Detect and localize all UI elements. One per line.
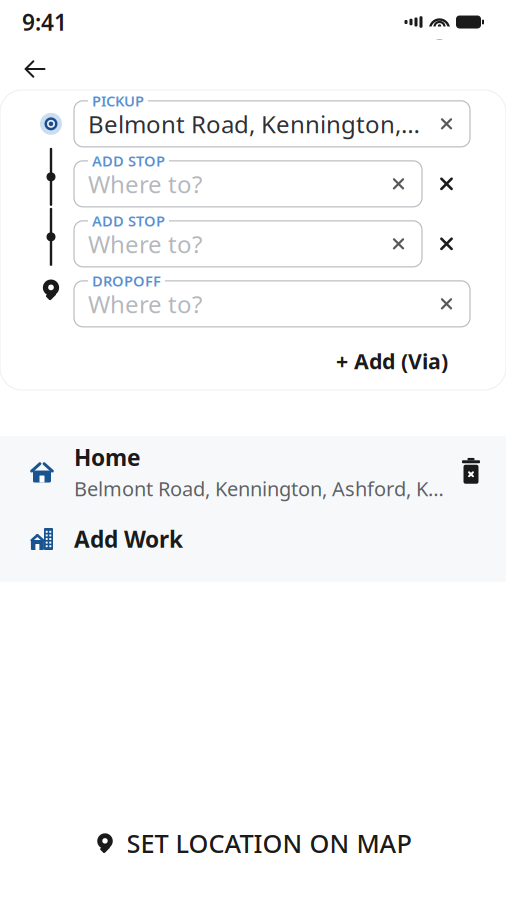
staticText: Where to? xyxy=(88,168,202,200)
button[interactable]: Belmont Road, Kennington, Ashford, Ken xyxy=(74,101,470,147)
staticText: + Add (Via) xyxy=(336,347,448,375)
button[interactable]: + Add (Via) xyxy=(330,341,454,381)
button[interactable]: Remove stop xyxy=(432,229,461,258)
staticText: Where to? xyxy=(88,228,202,260)
staticText: Home xyxy=(74,442,141,472)
staticText: 9:41 xyxy=(22,7,67,37)
staticText: ADD STOP xyxy=(92,151,165,171)
staticText: SET LOCATION ON MAP xyxy=(126,826,411,860)
staticText: Where to? xyxy=(88,288,202,320)
button[interactable]: Add Work xyxy=(0,508,506,570)
button[interactable]: Where to? xyxy=(74,161,422,207)
staticText: Belmont Road, Kennington, Ashford, Ken xyxy=(88,108,421,140)
button[interactable]: Remove stop xyxy=(432,169,461,198)
staticText: Add Work xyxy=(74,524,183,554)
button[interactable]: SET LOCATION ON MAP xyxy=(74,816,431,870)
button[interactable]: Home xyxy=(0,436,506,508)
button[interactable]: Where to? xyxy=(74,281,470,327)
button[interactable]: Where to? xyxy=(74,221,422,267)
staticText: Belmont Road, Kennington, Ashford, Kent,… xyxy=(74,475,450,502)
button[interactable]: Back xyxy=(12,50,58,88)
staticText: ADD STOP xyxy=(92,211,165,231)
staticText: PICKUP xyxy=(92,91,144,111)
staticText: DROPOFF xyxy=(92,271,161,291)
